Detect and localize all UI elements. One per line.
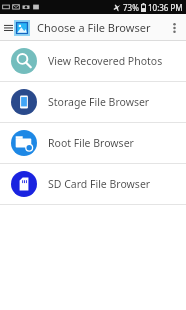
button[interactable]: Root File Browser xyxy=(0,123,186,163)
staticText: 10:36 PM xyxy=(148,2,183,13)
button[interactable]: More options xyxy=(166,16,182,40)
staticText: Storage File Browser xyxy=(48,95,150,109)
staticText: Choose a File Browser xyxy=(37,20,151,35)
staticText: SD Card File Browser xyxy=(48,177,151,191)
button[interactable]: Navigate up xyxy=(2,17,32,39)
button[interactable]: SD Card File Browser xyxy=(0,164,186,204)
button[interactable]: Storage File Browser xyxy=(0,82,186,122)
staticText: 73% xyxy=(123,2,139,13)
button[interactable]: View Recovered Photos xyxy=(0,41,186,81)
staticText: Root File Browser xyxy=(48,136,134,150)
staticText: View Recovered Photos xyxy=(48,54,163,68)
